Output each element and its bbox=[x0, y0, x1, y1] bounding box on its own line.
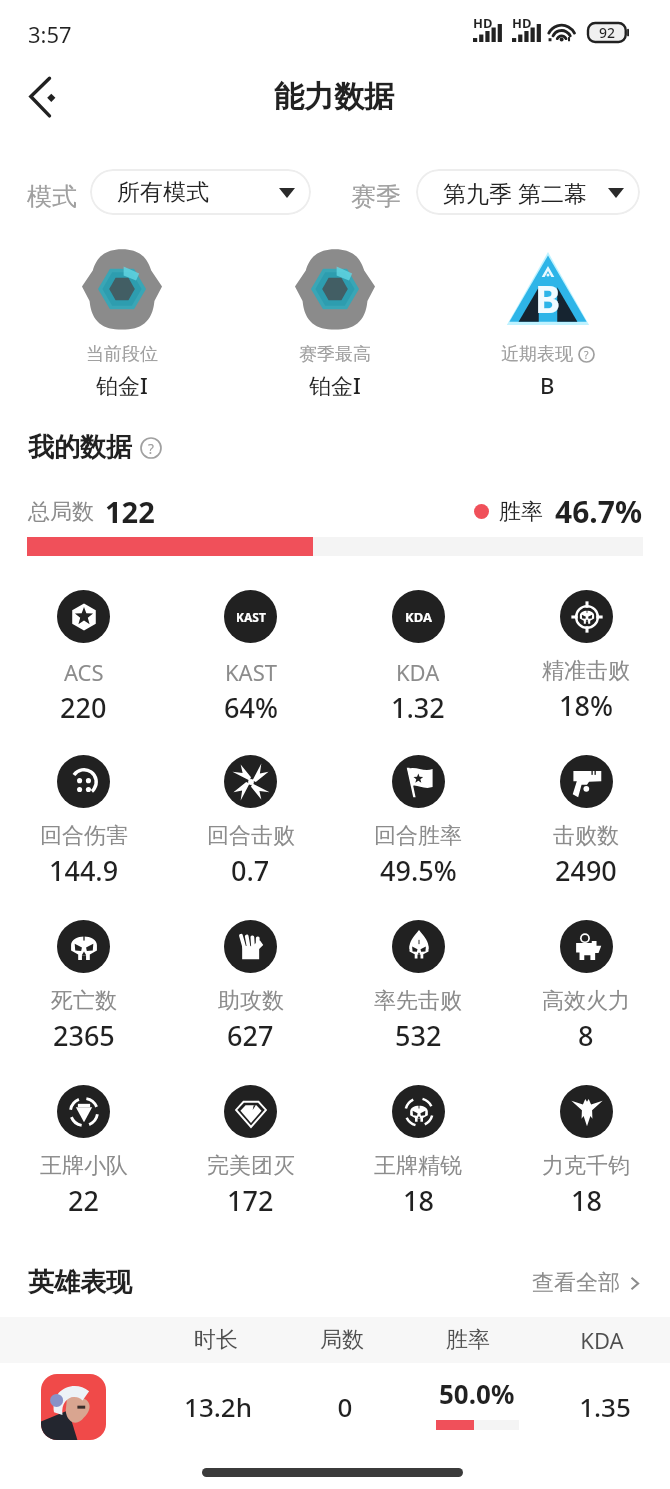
staticText: HD bbox=[473, 14, 493, 32]
staticText: 死亡数 bbox=[51, 987, 117, 1015]
staticText: 所有模式 bbox=[117, 178, 209, 207]
button[interactable]: 第九季 第二幕 bbox=[416, 169, 640, 215]
staticText: 能力数据 bbox=[274, 78, 394, 116]
staticText: 2365 bbox=[53, 1017, 115, 1054]
button[interactable]: 击败数 bbox=[502, 755, 670, 889]
button[interactable]: ACS bbox=[0, 590, 167, 726]
staticText: 时长 bbox=[171, 1326, 261, 1354]
button[interactable]: 高效火力 bbox=[502, 920, 670, 1054]
staticText: 模式 bbox=[27, 181, 77, 212]
button[interactable]: KDA bbox=[334, 590, 502, 726]
staticText: HD bbox=[512, 14, 532, 32]
button[interactable]: 精准击败 bbox=[502, 590, 670, 724]
button[interactable]: 助攻数 bbox=[167, 920, 334, 1054]
button[interactable]: 王牌精锐 bbox=[334, 1085, 502, 1219]
staticText: 1.35 bbox=[560, 1389, 650, 1424]
staticText: 627 bbox=[227, 1017, 274, 1054]
staticText: 完美团灭 bbox=[207, 1152, 295, 1180]
staticText: 0 bbox=[300, 1389, 390, 1424]
staticText: 1.32 bbox=[391, 689, 445, 726]
staticText: 172 bbox=[227, 1182, 274, 1219]
staticText: ? bbox=[148, 439, 154, 458]
staticText: 回合伤害 bbox=[40, 822, 128, 850]
button[interactable]: 死亡数 bbox=[0, 920, 167, 1054]
staticText: KDA bbox=[405, 608, 432, 626]
staticText: 赛季 bbox=[351, 181, 401, 212]
button[interactable]: 回合胜率 bbox=[334, 755, 502, 889]
button[interactable]: 回合伤害 bbox=[0, 755, 167, 889]
button[interactable]: 完美团灭 bbox=[167, 1085, 334, 1219]
staticText: 我的数据 bbox=[28, 431, 132, 464]
button[interactable]: 力克千钧 bbox=[502, 1085, 670, 1219]
staticText: 胜率 bbox=[423, 1326, 513, 1354]
button[interactable]: 所有模式 bbox=[90, 169, 311, 215]
button[interactable]: 查看全部 bbox=[532, 1269, 642, 1297]
staticText: 13.2h bbox=[173, 1389, 263, 1424]
staticText: 8 bbox=[578, 1017, 594, 1054]
staticText: 3:57 bbox=[28, 19, 72, 49]
button[interactable]: KAST bbox=[167, 590, 334, 726]
staticText: 144.9 bbox=[49, 852, 119, 889]
staticText: 532 bbox=[395, 1017, 442, 1054]
staticText: 王牌精锐 bbox=[374, 1152, 462, 1180]
staticText: 力克千钧 bbox=[542, 1152, 630, 1180]
staticText: B bbox=[535, 272, 561, 324]
staticText: 铂金I bbox=[96, 370, 148, 400]
staticText: 近期表现 bbox=[501, 343, 573, 366]
staticText: 46.7% bbox=[555, 491, 642, 532]
staticText: 2490 bbox=[555, 852, 617, 889]
staticText: 英雄表现 bbox=[28, 1266, 132, 1299]
staticText: 击败数 bbox=[553, 822, 619, 850]
button[interactable]: 13.2h bbox=[0, 1363, 670, 1453]
button[interactable]: B bbox=[441, 246, 654, 400]
staticText: 率先击败 bbox=[374, 987, 462, 1015]
staticText: ACS bbox=[64, 657, 104, 687]
staticText: ? bbox=[584, 348, 589, 362]
staticText: 22 bbox=[68, 1182, 99, 1219]
staticText: 回合击败 bbox=[207, 822, 295, 850]
staticText: 第九季 第二幕 bbox=[443, 177, 587, 208]
staticText: 49.5% bbox=[380, 852, 457, 889]
staticText: 局数 bbox=[297, 1326, 387, 1354]
staticText: 0.7 bbox=[231, 852, 270, 889]
staticText: 92 bbox=[599, 23, 616, 42]
staticText: 220 bbox=[60, 689, 107, 726]
staticText: KDA bbox=[396, 657, 440, 687]
staticText: 高效火力 bbox=[542, 987, 630, 1015]
staticText: 总局数 bbox=[28, 498, 94, 526]
staticText: KAST bbox=[236, 609, 266, 625]
staticText: 18% bbox=[559, 687, 613, 724]
staticText: KDA bbox=[557, 1325, 647, 1355]
staticText: KAST bbox=[225, 657, 277, 687]
button[interactable]: 赛季最高 bbox=[228, 246, 441, 400]
button[interactable]: 当前段位 bbox=[16, 246, 228, 400]
staticText: 50.0% bbox=[439, 1376, 515, 1411]
button[interactable]: 率先击败 bbox=[334, 920, 502, 1054]
button[interactable]: Back bbox=[14, 70, 70, 122]
staticText: 64% bbox=[224, 689, 278, 726]
staticText: 查看全部 bbox=[532, 1269, 620, 1297]
button[interactable]: 回合击败 bbox=[167, 755, 334, 889]
staticText: 铂金I bbox=[309, 370, 361, 400]
staticText: 王牌小队 bbox=[40, 1152, 128, 1180]
staticText: 回合胜率 bbox=[374, 822, 462, 850]
button[interactable]: 王牌小队 bbox=[0, 1085, 167, 1219]
staticText: 精准击败 bbox=[542, 657, 630, 685]
staticText: 122 bbox=[105, 492, 155, 531]
staticText: 18 bbox=[403, 1182, 434, 1219]
staticText: 18 bbox=[571, 1182, 602, 1219]
staticText: 胜率 bbox=[499, 498, 543, 526]
staticText: 赛季最高 bbox=[299, 343, 371, 366]
staticText: 助攻数 bbox=[218, 987, 284, 1015]
staticText: B bbox=[540, 370, 555, 400]
staticText: 当前段位 bbox=[86, 343, 158, 366]
